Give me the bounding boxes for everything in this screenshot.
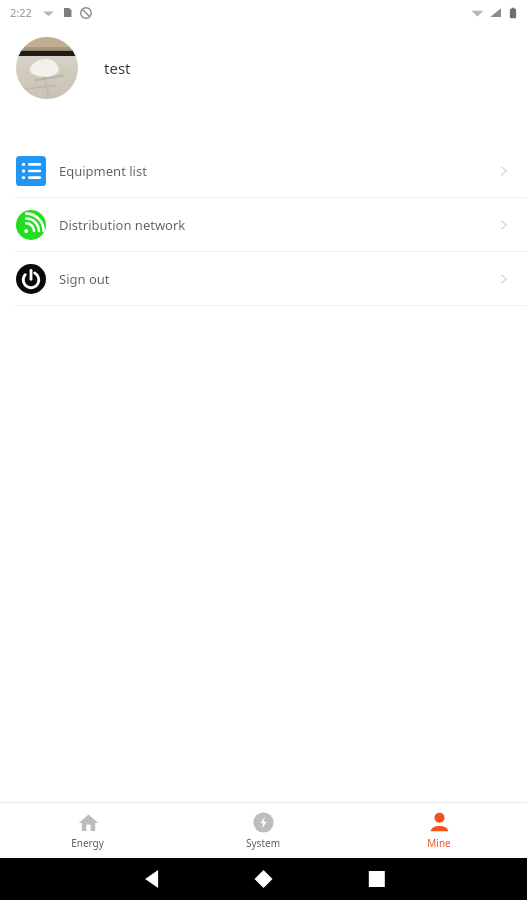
staticText: Equipment list bbox=[59, 162, 497, 180]
button[interactable]: test bbox=[0, 24, 527, 112]
button[interactable]: Energy bbox=[0, 803, 175, 858]
staticText: 2:22 bbox=[10, 5, 32, 20]
button[interactable]: Sign out bbox=[0, 252, 527, 305]
staticText: test bbox=[104, 58, 131, 78]
button[interactable]: Distribution network bbox=[0, 198, 527, 251]
staticText: Mine bbox=[427, 836, 451, 850]
staticText: Energy bbox=[71, 836, 104, 850]
staticText: Distribution network bbox=[59, 216, 497, 234]
button[interactable]: Mine bbox=[351, 803, 527, 858]
button[interactable]: System bbox=[175, 803, 351, 858]
staticText: System bbox=[246, 836, 280, 850]
button[interactable]: Equipment list bbox=[0, 144, 527, 197]
staticText: Sign out bbox=[59, 270, 497, 288]
